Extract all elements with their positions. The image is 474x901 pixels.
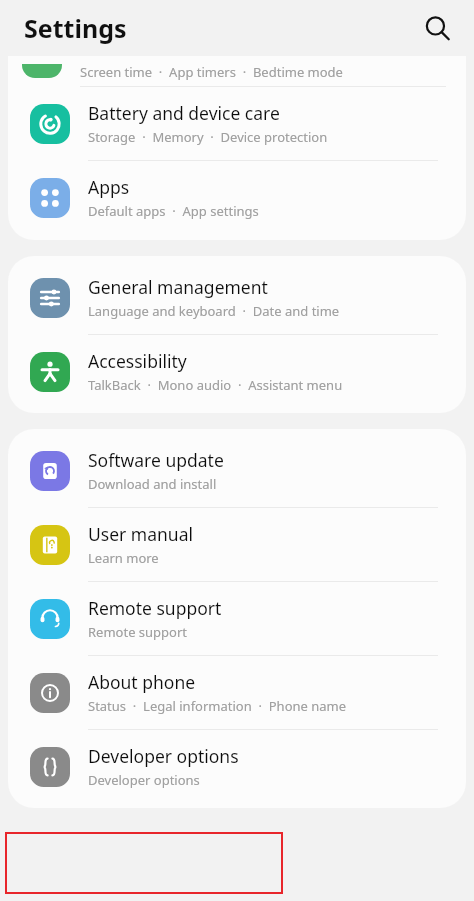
staticText: Battery and device care <box>88 101 280 125</box>
button[interactable]: Screen time · App timers · Bedtime mode <box>8 56 466 86</box>
staticText: Storage · Memory · Device protection <box>88 128 328 146</box>
staticText: Apps <box>88 175 130 199</box>
button[interactable]: Battery and device care <box>8 87 466 160</box>
button[interactable]: About phone <box>8 656 466 729</box>
staticText: General management <box>88 275 268 299</box>
button[interactable]: User manual <box>8 508 466 581</box>
staticText: Status · Legal information · Phone name <box>88 697 347 715</box>
staticText: Default apps · App settings <box>88 202 259 220</box>
staticText: Accessibility <box>88 349 187 373</box>
staticText: Developer options <box>88 771 200 789</box>
button[interactable]: Developer options <box>8 730 466 803</box>
staticText: Remote support <box>88 623 188 641</box>
staticText: About phone <box>88 670 196 694</box>
staticText: Language and keyboard · Date and time <box>88 302 340 320</box>
button[interactable]: Remote support <box>8 582 466 655</box>
staticText: TalkBack · Mono audio · Assistant menu <box>88 376 343 394</box>
button[interactable]: Apps <box>8 161 466 234</box>
staticText: Software update <box>88 448 224 472</box>
button[interactable]: Search <box>414 5 460 51</box>
staticText: Developer options <box>88 744 239 768</box>
staticText: Screen time · App timers · Bedtime mode <box>80 63 343 81</box>
staticText: Settings <box>24 11 127 45</box>
button[interactable]: Software update <box>8 434 466 507</box>
button[interactable]: Accessibility <box>8 335 466 408</box>
staticText: Remote support <box>88 596 222 620</box>
staticText: User manual <box>88 522 193 546</box>
button[interactable]: General management <box>8 261 466 334</box>
staticText: Learn more <box>88 549 159 567</box>
staticText: Download and install <box>88 475 217 493</box>
